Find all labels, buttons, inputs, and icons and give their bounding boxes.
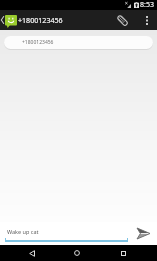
staticText: +1800123456 (22, 39, 54, 46)
button[interactable]: Send (131, 222, 157, 245)
button[interactable]: Back (9, 245, 55, 261)
button[interactable]: More options (140, 10, 154, 30)
staticText: 8:53 (140, 0, 154, 10)
button[interactable]: Home (54, 245, 100, 261)
button[interactable]: Attach (113, 10, 132, 30)
button[interactable]: Navigate up (0, 10, 17, 30)
staticText: +1800123456 (18, 15, 63, 25)
button[interactable]: Recent apps (100, 245, 146, 261)
staticText: Wake up cat (7, 228, 39, 235)
